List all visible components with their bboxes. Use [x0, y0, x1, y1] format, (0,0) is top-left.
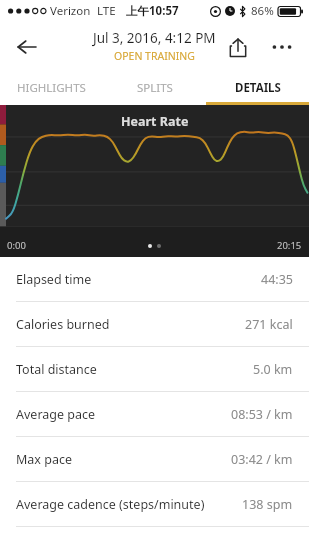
button[interactable]: Average cadence (steps/minute) [0, 482, 309, 527]
button[interactable]: Total distance [0, 347, 309, 392]
button[interactable]: HIGHLIGHTS [0, 72, 103, 105]
staticText: 03:42 / km [231, 451, 293, 468]
button[interactable]: Max pace [0, 437, 309, 482]
button[interactable]: Average pace [0, 392, 309, 437]
button[interactable]: Back [7, 27, 47, 67]
staticText: OPEN TRAINING [114, 49, 195, 63]
button[interactable]: Heart Rate [0, 105, 309, 257]
staticText: Average pace [16, 406, 96, 423]
staticText: Jul 3, 2016, 4:12 PM [93, 29, 216, 47]
staticText: 5.0 km [253, 361, 293, 378]
button[interactable]: DETAILS [206, 72, 309, 105]
staticText: LTE [97, 3, 116, 19]
staticText: 44:35 [261, 271, 293, 288]
staticText: 138 spm [242, 496, 293, 513]
staticText: 08:53 / km [231, 406, 293, 423]
staticText: SPLITS [137, 80, 173, 96]
staticText: Total distance [16, 361, 97, 378]
staticText: HIGHLIGHTS [17, 80, 86, 96]
button[interactable]: Elapsed time [0, 257, 309, 302]
staticText: Average cadence (steps/minute) [16, 496, 205, 513]
staticText: Max pace [16, 451, 72, 468]
button[interactable]: More options [263, 28, 301, 66]
staticText: DETAILS [235, 80, 281, 96]
staticText: Calories burned [16, 316, 110, 333]
staticText: Elapsed time [16, 271, 92, 288]
button[interactable]: SPLITS [103, 72, 206, 105]
button[interactable]: Share [220, 29, 256, 65]
staticText: 上午10:57 [126, 3, 179, 19]
staticText: Verizon [50, 3, 91, 19]
staticText: 20:15 [277, 239, 302, 252]
staticText: 86% [251, 3, 274, 19]
staticText: 0:00 [7, 239, 26, 252]
staticText: 271 kcal [245, 316, 293, 333]
button[interactable]: Calories burned [0, 302, 309, 347]
staticText: Heart Rate [121, 113, 189, 130]
